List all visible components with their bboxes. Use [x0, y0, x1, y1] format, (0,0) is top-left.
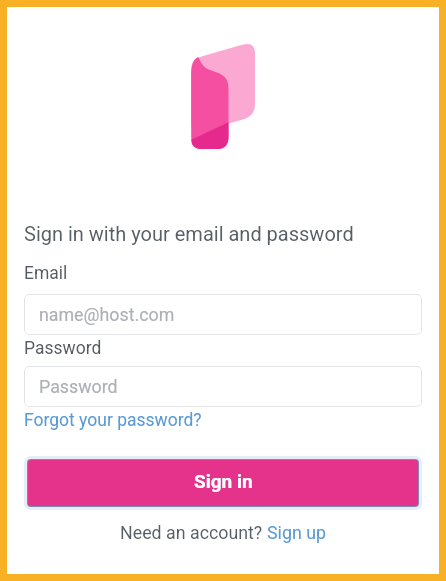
staticText: name@host.com [39, 304, 175, 325]
button[interactable]: Sign up [267, 522, 326, 543]
staticText: Need an account? [120, 522, 267, 543]
staticText: Sign in with your email and password [24, 222, 354, 245]
staticText: Sign in [194, 470, 253, 492]
other: Pulumi logo [191, 42, 255, 149]
staticText: Forgot your password? [24, 410, 202, 431]
staticText: Email [24, 263, 68, 284]
button[interactable]: name@host.com [24, 294, 422, 335]
button[interactable]: Forgot your password? [24, 410, 202, 431]
staticText: Password [24, 338, 102, 359]
staticText: Sign up [267, 522, 326, 543]
staticText: Password [39, 376, 118, 397]
button[interactable]: Sign in [28, 460, 418, 506]
button[interactable]: Password [24, 366, 422, 407]
